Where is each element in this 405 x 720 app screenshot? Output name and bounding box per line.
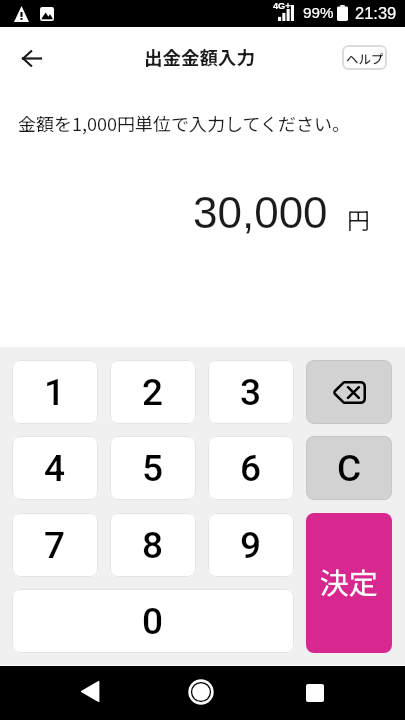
staticText: 金額を1,000円単位で入力してください。 — [18, 110, 350, 136]
button[interactable]: 4 — [12, 436, 98, 500]
staticText: 99% — [303, 4, 334, 21]
staticText: 21:39 — [355, 4, 397, 22]
staticText: 4G+ — [273, 1, 291, 11]
staticText: 2 — [142, 371, 164, 414]
button[interactable]: 5 — [110, 436, 196, 500]
staticText: ヘルプ — [346, 49, 384, 67]
staticText: 3 — [240, 371, 262, 414]
button[interactable]: 9 — [208, 513, 294, 577]
staticText: 出金金額入力 — [144, 44, 256, 71]
button[interactable]: ヘルプ — [342, 45, 387, 70]
staticText: 円 — [347, 202, 370, 235]
staticText: 5 — [142, 447, 164, 490]
staticText: C — [337, 447, 362, 490]
button[interactable]: Clear — [306, 436, 392, 500]
button[interactable]: Back — [11, 38, 51, 78]
button[interactable]: 0 — [12, 589, 294, 653]
staticText: 8 — [142, 524, 164, 567]
button[interactable]: 6 — [208, 436, 294, 500]
staticText: 30,000 — [193, 188, 328, 237]
button[interactable]: Back — [70, 671, 110, 711]
staticText: 決定 — [320, 560, 379, 602]
staticText: 7 — [44, 524, 66, 567]
staticText: 4 — [44, 447, 66, 490]
button[interactable]: 決定 — [306, 513, 392, 653]
button[interactable]: 2 — [110, 360, 196, 424]
button[interactable]: 7 — [12, 513, 98, 577]
button[interactable]: Home — [181, 672, 221, 712]
button[interactable]: Recent apps — [295, 673, 335, 713]
button[interactable]: 3 — [208, 360, 294, 424]
staticText: 6 — [240, 447, 262, 490]
button[interactable]: 8 — [110, 513, 196, 577]
button[interactable]: 1 — [12, 360, 98, 424]
button[interactable]: Backspace — [306, 360, 392, 424]
staticText: 1 — [44, 371, 66, 414]
staticText: 9 — [240, 524, 262, 567]
staticText: 0 — [142, 600, 164, 643]
